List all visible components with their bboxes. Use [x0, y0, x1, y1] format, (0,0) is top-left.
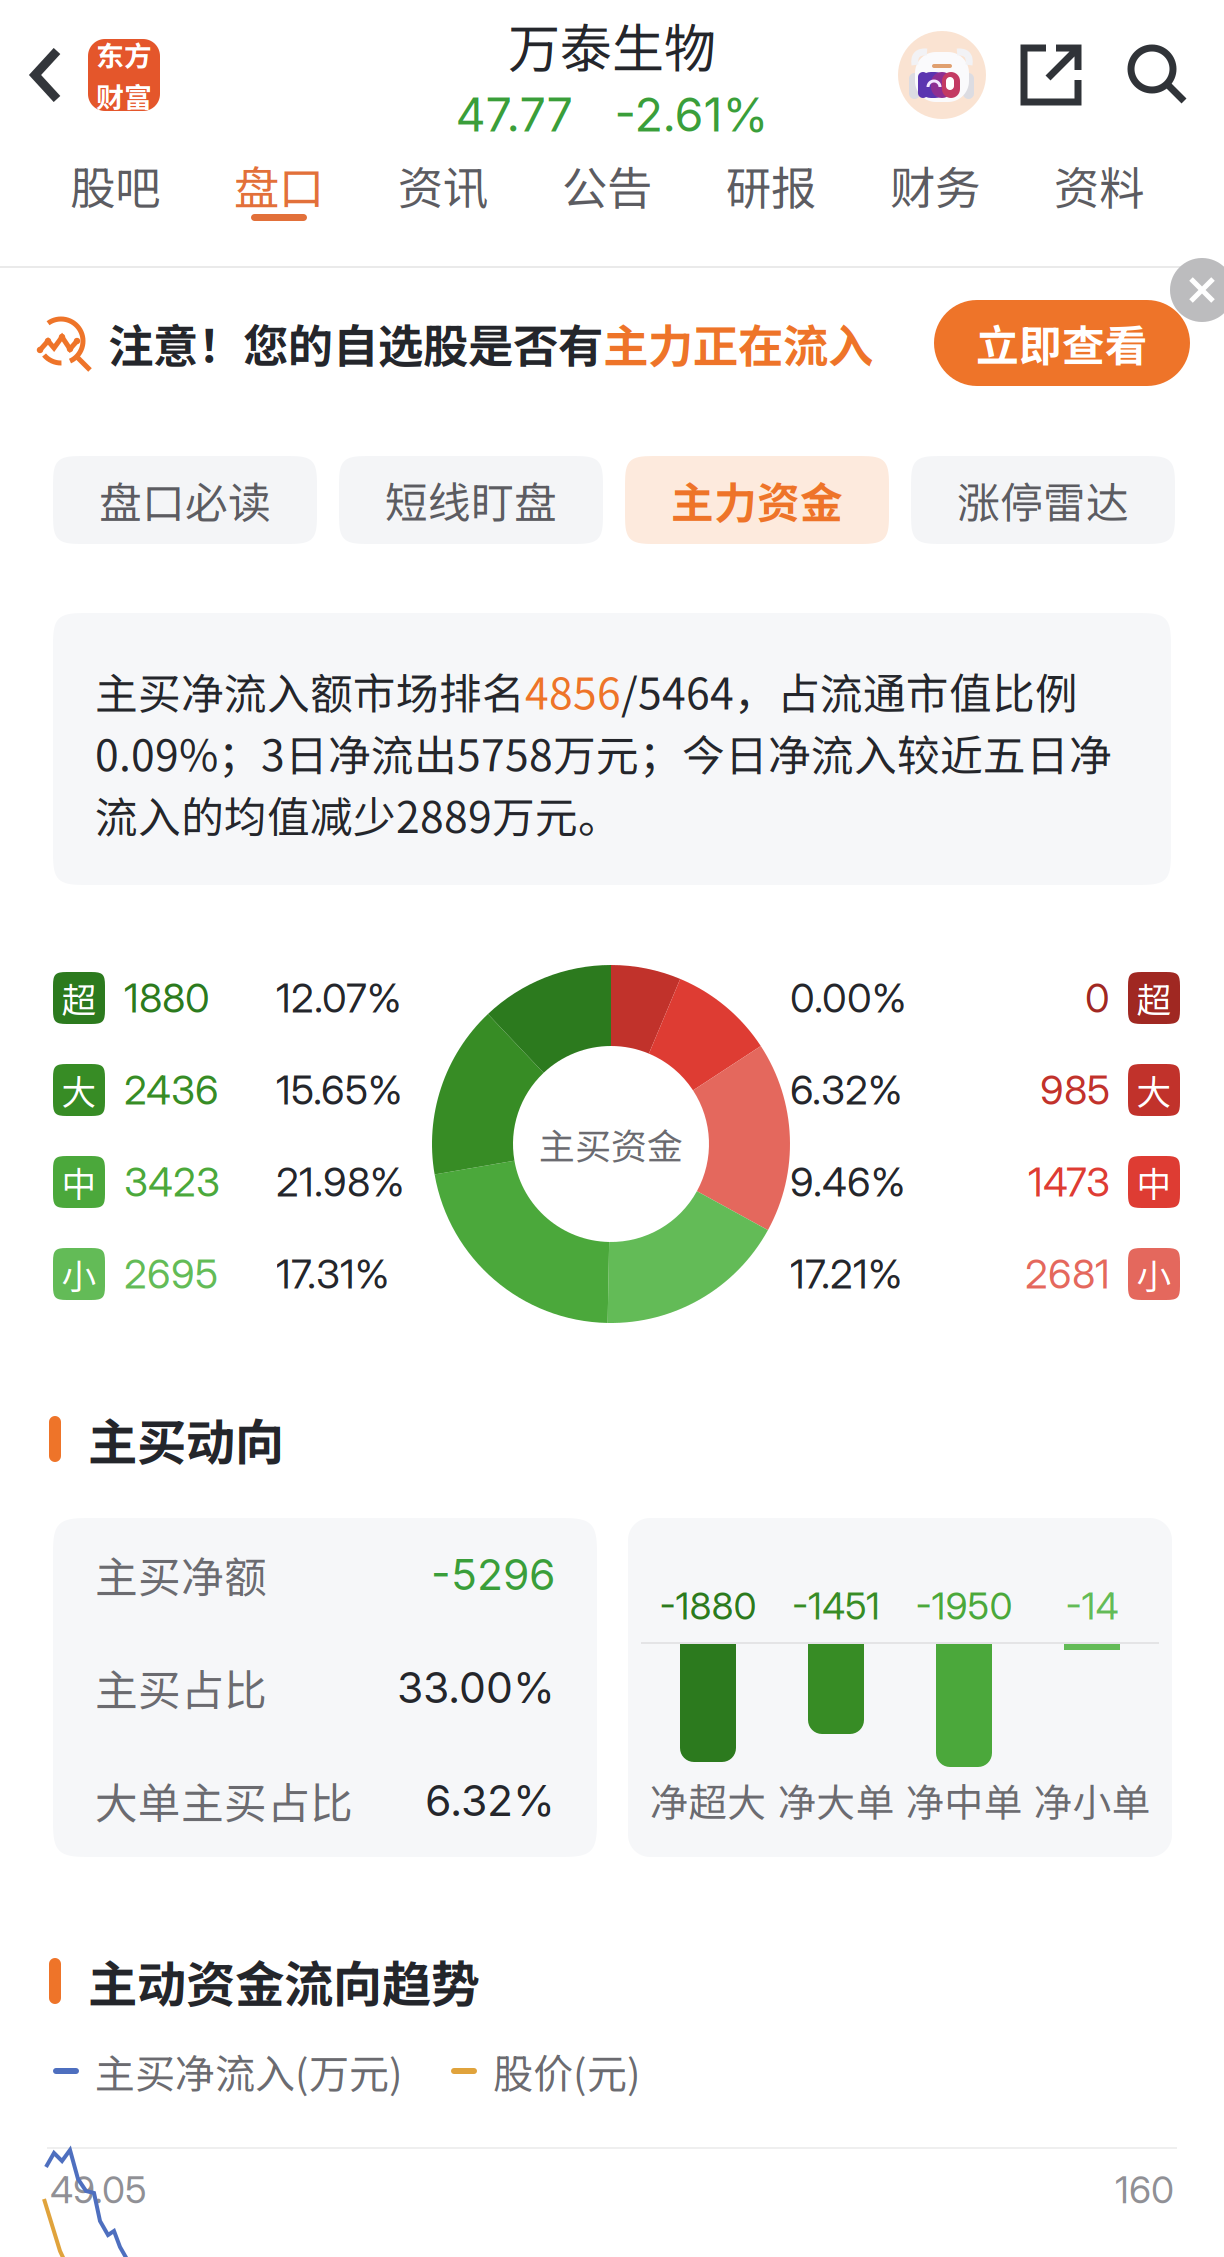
staticText: 49.05 — [50, 2167, 147, 2212]
staticText: 股吧 — [70, 152, 160, 218]
staticText: 立即查看 — [976, 312, 1148, 374]
staticText: 注意！ — [108, 310, 243, 376]
staticText: 短线盯盘 — [385, 469, 557, 531]
staticText: 6.32% — [425, 1775, 555, 1826]
staticText: 1473 — [1028, 1158, 1110, 1206]
staticText: 2695 — [124, 1250, 218, 1298]
staticText: 净小单 — [1033, 1772, 1150, 1828]
staticText: 涨停雷达 — [957, 469, 1129, 531]
staticText: 净超大 — [649, 1772, 766, 1828]
staticText: 股价(元) — [493, 2042, 641, 2100]
staticText: 47.77 — [455, 86, 572, 143]
staticText: 超 — [61, 973, 96, 1023]
button[interactable]: 主力资金 — [625, 456, 889, 544]
staticText: 15.65% — [276, 1066, 402, 1114]
button[interactable]: 财务 — [853, 150, 1017, 266]
staticText: 主买动向 — [88, 1403, 284, 1475]
staticText: -5296 — [431, 1549, 555, 1600]
staticText: 33.00% — [397, 1662, 555, 1713]
staticText: 3423 — [124, 1158, 220, 1206]
staticText: 盘口 — [234, 152, 324, 218]
staticText: 净中单 — [905, 1772, 1022, 1828]
button[interactable]: Search — [1082, 44, 1224, 106]
button[interactable]: 资料 — [1017, 150, 1181, 266]
staticText: 超 — [1136, 973, 1171, 1023]
staticText: 2681 — [1025, 1250, 1110, 1298]
button[interactable]: 盘口必读 — [53, 456, 317, 544]
staticText: 主动资金流向趋势 — [88, 1945, 480, 2017]
staticText: 财富 — [96, 75, 152, 116]
staticText: 盘口必读 — [99, 469, 271, 531]
staticText: 主买净流入额市场排名4856/5464，占流通市值比例0.09%；3日净流出57… — [95, 660, 1112, 845]
staticText: 东方 — [96, 34, 152, 74]
button[interactable]: AI Assistant — [898, 31, 986, 119]
button[interactable]: Back — [0, 45, 88, 105]
staticText: 主力正在流入 — [603, 310, 873, 376]
button[interactable]: 盘口 — [197, 150, 361, 266]
staticText: 中 — [1136, 1157, 1171, 1207]
staticText: 资料 — [1054, 152, 1144, 218]
staticText: -2.61% — [614, 86, 768, 143]
staticText: 985 — [1040, 1066, 1110, 1114]
staticText: 48.71 — [50, 2252, 136, 2257]
staticText: 1880 — [124, 974, 210, 1022]
staticText: 17.21% — [790, 1250, 902, 1298]
staticText: 资讯 — [398, 152, 488, 218]
staticText: 您的自选股是否有 — [243, 310, 603, 376]
staticText: 12.07% — [276, 974, 401, 1022]
button[interactable]: 短线盯盘 — [339, 456, 603, 544]
button[interactable]: 资讯 — [361, 150, 525, 266]
staticText: -1950 — [915, 1583, 1012, 1629]
staticText: 净大单 — [777, 1772, 894, 1828]
staticText: 2436 — [124, 1066, 219, 1114]
staticText: 主买净流入(万元) — [95, 2042, 403, 2100]
staticText: 0 — [1085, 974, 1110, 1022]
button[interactable]: 涨停雷达 — [911, 456, 1175, 544]
staticText: 研报 — [726, 152, 816, 218]
button[interactable]: East Money — [88, 39, 160, 111]
staticText: 主买资金 — [539, 1118, 683, 1170]
staticText: 小 — [1136, 1249, 1171, 1299]
staticText: 大 — [61, 1065, 96, 1115]
staticText: 6.32% — [790, 1066, 902, 1114]
button[interactable]: 研报 — [689, 150, 853, 266]
button[interactable]: 股吧 — [33, 150, 197, 266]
staticText: -1451 — [792, 1583, 880, 1629]
staticText: 万泰生物 — [508, 7, 716, 82]
staticText: 小 — [61, 1249, 96, 1299]
staticText: 160 — [1115, 2167, 1174, 2212]
staticText: 主买净额 — [95, 1544, 267, 1605]
staticText: -14 — [1065, 1583, 1118, 1629]
staticText: 大单主买占比 — [95, 1770, 353, 1831]
button[interactable]: Share — [986, 44, 1082, 106]
staticText: 17.31% — [276, 1250, 389, 1298]
button[interactable]: 立即查看 — [934, 300, 1190, 386]
staticText: 公告 — [562, 152, 652, 218]
staticText: 主买占比 — [95, 1657, 267, 1718]
staticText: 21.98% — [276, 1158, 404, 1206]
staticText: 财务 — [890, 152, 980, 218]
staticText: 中 — [61, 1157, 96, 1207]
staticText: -1880 — [659, 1583, 756, 1629]
staticText: 大 — [1136, 1065, 1171, 1115]
button[interactable]: Close banner — [1158, 268, 1224, 334]
staticText: 9.46% — [790, 1158, 905, 1206]
staticText: 主力资金 — [671, 469, 843, 531]
staticText: 0.00% — [790, 974, 906, 1022]
button[interactable]: 公告 — [525, 150, 689, 266]
